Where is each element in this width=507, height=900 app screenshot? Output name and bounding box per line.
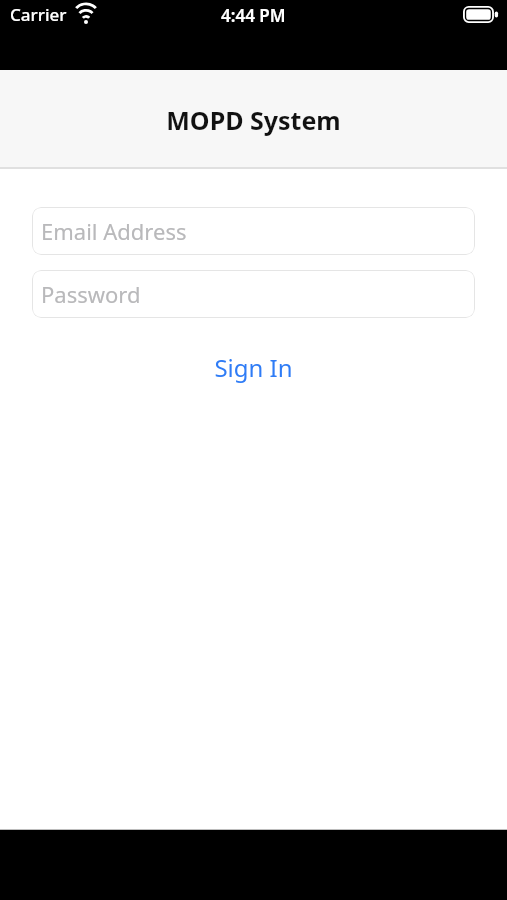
staticText: 4:44 PM	[221, 4, 286, 27]
other: Wi-Fi signal	[74, 6, 98, 24]
button[interactable]: Password	[32, 270, 475, 318]
other: Battery full	[463, 6, 499, 23]
button[interactable]: Sign In	[0, 351, 507, 384]
staticText: MOPD System	[166, 103, 341, 137]
button[interactable]: Email Address	[32, 207, 475, 255]
staticText: Email Address	[41, 216, 187, 246]
staticText: Carrier	[10, 3, 67, 26]
staticText: Password	[41, 279, 141, 309]
staticText: Sign In	[214, 351, 293, 384]
